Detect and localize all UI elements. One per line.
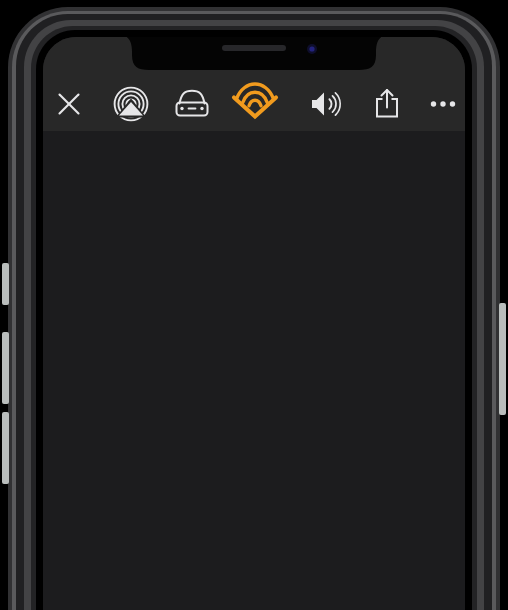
button[interactable]: Close <box>47 82 91 126</box>
button[interactable]: Car mode <box>168 80 216 128</box>
button[interactable]: Volume <box>302 81 348 127</box>
button[interactable]: AirPlay <box>109 82 153 126</box>
button[interactable]: Share <box>365 82 409 126</box>
button[interactable]: More options <box>421 82 465 126</box>
button[interactable]: Audible <box>229 78 281 130</box>
